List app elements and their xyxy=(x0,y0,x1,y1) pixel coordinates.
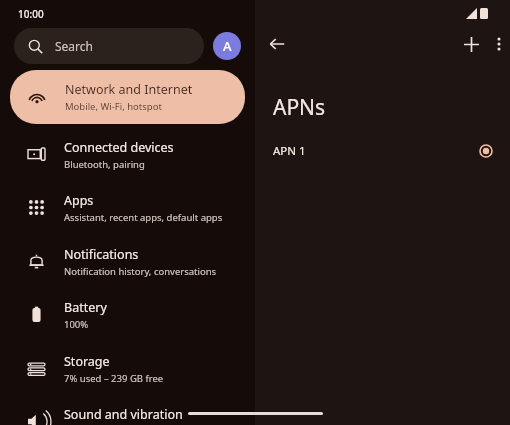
staticText: Connected devices xyxy=(64,139,174,156)
staticText: Notifications xyxy=(64,246,139,263)
staticText: Network and Internet xyxy=(65,81,193,98)
staticText: Search xyxy=(55,38,93,54)
staticText: Notification history, conversations xyxy=(64,265,217,278)
staticText: 10:00 xyxy=(18,7,44,21)
staticText: 100% xyxy=(64,318,89,331)
staticText: Mobile, Wi-Fi, hotspot xyxy=(65,100,162,113)
button[interactable]: APN 1 xyxy=(255,133,510,169)
staticText: APNs xyxy=(273,93,326,122)
button[interactable]: Storage xyxy=(0,342,255,395)
button[interactable]: Network and Internet xyxy=(10,70,245,124)
button[interactable]: Back xyxy=(263,30,291,58)
staticText: Battery xyxy=(64,299,107,316)
staticText: Assistant, recent apps, default apps xyxy=(64,211,223,224)
staticText: APN 1 xyxy=(273,143,306,159)
button[interactable]: Battery xyxy=(0,288,255,341)
button[interactable]: Apps xyxy=(0,181,255,234)
staticText: Storage xyxy=(64,353,110,370)
button[interactable]: Notifications xyxy=(0,235,255,288)
staticText: 7% used – 239 GB free xyxy=(64,372,164,385)
button[interactable]: Add APN xyxy=(457,30,485,58)
button[interactable]: Search xyxy=(14,28,204,64)
button[interactable]: Connected devices xyxy=(0,128,255,181)
staticText: Apps xyxy=(64,192,94,209)
button[interactable]: Account xyxy=(213,32,241,60)
button[interactable]: Sound and vibration xyxy=(0,395,255,425)
staticText: A xyxy=(223,37,232,55)
button[interactable]: More options xyxy=(485,30,510,58)
staticText: Bluetooth, pairing xyxy=(64,158,145,171)
staticText: Sound and vibration xyxy=(64,406,183,423)
